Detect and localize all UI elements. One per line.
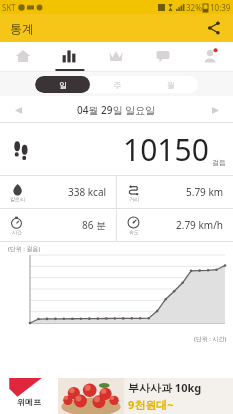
button[interactable]: Profile xyxy=(186,42,233,69)
staticText: (단위 : 시간) xyxy=(194,335,227,343)
staticText: 부사사과 10kg xyxy=(128,380,202,395)
button[interactable]: Previous day xyxy=(8,100,28,120)
button[interactable]: Home xyxy=(0,42,46,69)
button[interactable]: Next day xyxy=(205,100,225,120)
staticText: 속도 xyxy=(129,229,139,235)
staticText: 일 xyxy=(59,80,67,90)
staticText: 시간 xyxy=(12,229,22,235)
button[interactable]: 주 xyxy=(90,76,144,93)
staticText: 86 분 xyxy=(82,218,107,232)
button[interactable]: Advertisement xyxy=(0,378,233,414)
staticText: 주 xyxy=(113,80,121,90)
staticText: 월 xyxy=(167,80,175,90)
button[interactable]: Share xyxy=(203,17,225,39)
button[interactable]: 거리 xyxy=(117,176,233,208)
staticText: 위메프 xyxy=(17,397,41,407)
button[interactable]: 일 xyxy=(35,76,90,93)
staticText: 10150 xyxy=(123,129,209,170)
staticText: SKT xyxy=(2,2,16,13)
staticText: 통계 xyxy=(10,21,34,36)
button[interactable]: Ranking xyxy=(92,42,139,69)
staticText: 5.79 km xyxy=(186,185,224,199)
button[interactable]: 속도 xyxy=(117,209,233,241)
staticText: 9천원대~ xyxy=(128,397,174,412)
staticText: 2.79 km/h xyxy=(176,218,224,232)
staticText: 10:39 xyxy=(210,2,231,13)
button[interactable]: 시간 xyxy=(0,209,116,241)
staticText: 04월 29일 일요일 xyxy=(77,103,156,117)
staticText: 거리 xyxy=(129,196,139,202)
button[interactable]: 칼로리 xyxy=(0,176,116,208)
staticText: (단위 : 걸음) xyxy=(8,245,41,253)
button[interactable]: 월 xyxy=(144,76,198,93)
staticText: 338 kcal xyxy=(68,185,107,199)
staticText: 걸음 xyxy=(212,158,226,167)
staticText: 칼로리 xyxy=(10,196,25,202)
button[interactable]: Chat xyxy=(139,42,186,69)
button[interactable]: Statistics xyxy=(46,42,92,69)
staticText: 32% xyxy=(186,2,202,13)
